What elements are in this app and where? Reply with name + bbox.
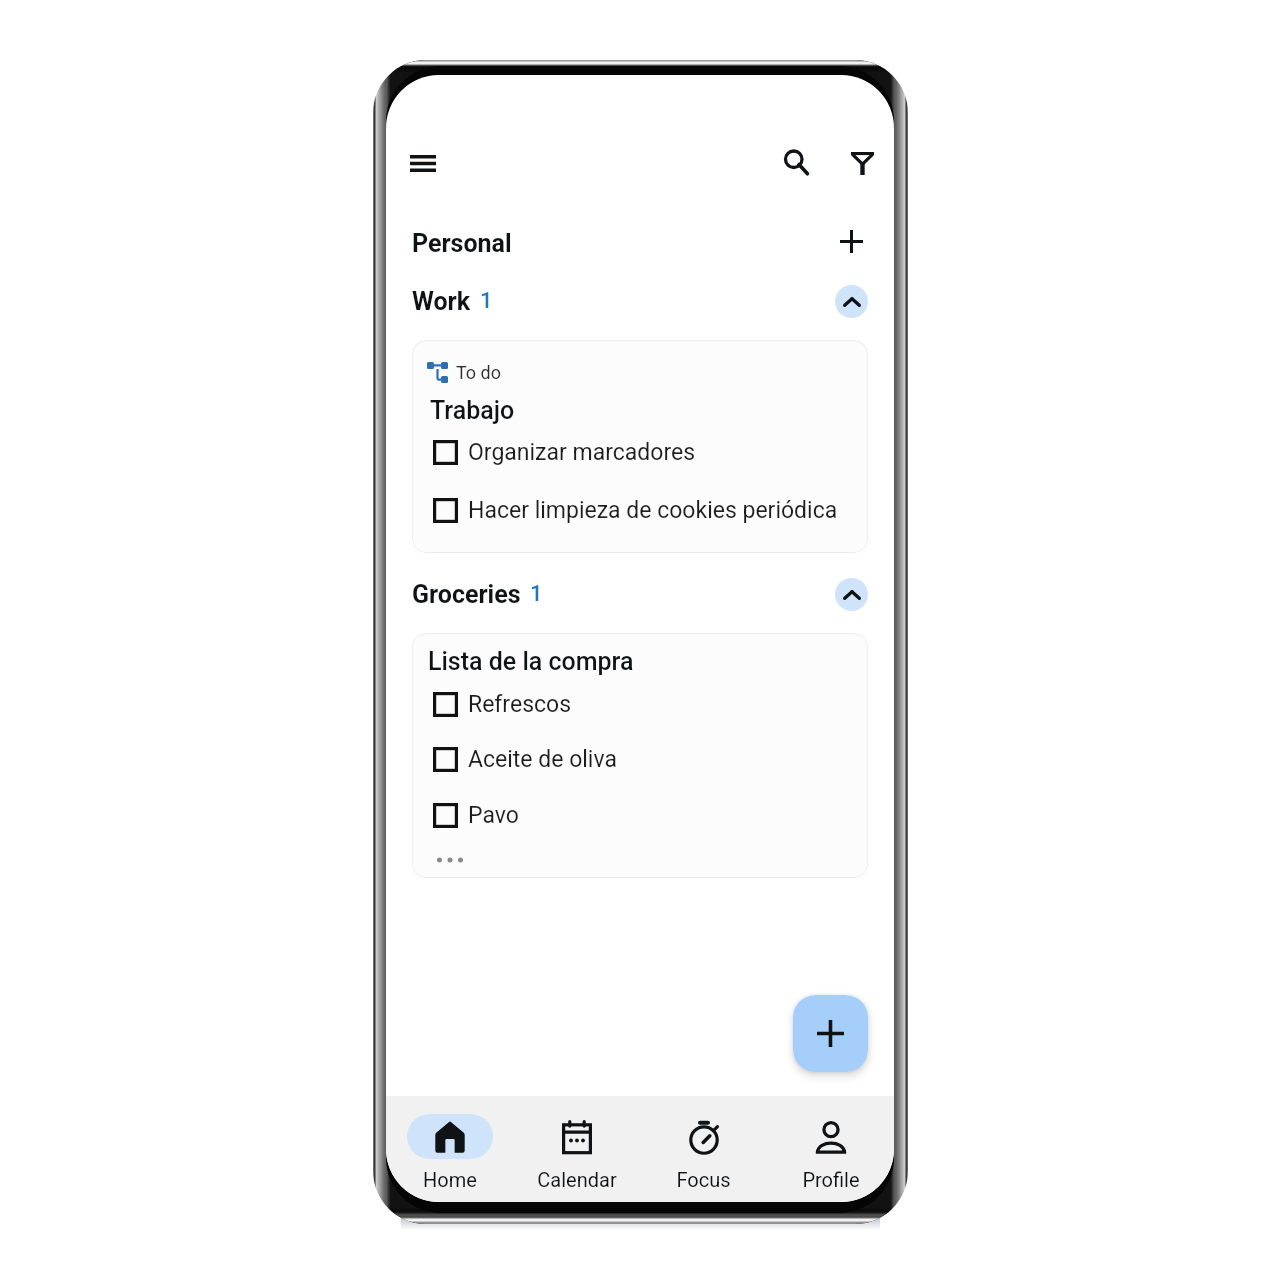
staticText: Aceite de oliva [468, 746, 617, 773]
staticText: Work [412, 287, 471, 316]
button[interactable]: Add task [793, 995, 868, 1072]
button[interactable]: Personal [386, 221, 894, 265]
button[interactable]: Focus [640, 1096, 767, 1202]
button[interactable]: Filter [839, 140, 885, 186]
button[interactable]: Groceries [386, 572, 894, 616]
button[interactable]: Collapse Groceries [835, 578, 868, 611]
button[interactable]: Search [773, 139, 819, 185]
staticText: Calendar [537, 1168, 617, 1191]
button[interactable]: Pavo [412, 792, 868, 838]
staticText: 1 [480, 288, 493, 314]
staticText: Personal [412, 229, 512, 258]
button[interactable]: Hacer limpieza de cookies periódica [412, 487, 868, 533]
button[interactable]: Menu [399, 144, 446, 182]
staticText: Hacer limpieza de cookies periódica [468, 497, 838, 524]
button[interactable]: Work [386, 279, 894, 323]
button[interactable]: Collapse Work [835, 285, 868, 318]
staticText: Focus [676, 1168, 731, 1191]
staticText: Home [423, 1168, 477, 1191]
button[interactable]: Refrescos [412, 681, 868, 727]
button[interactable]: Aceite de oliva [412, 736, 868, 782]
staticText: 1 [530, 581, 543, 607]
staticText: Trabajo [430, 396, 515, 425]
staticText: To do [456, 362, 502, 383]
button[interactable]: To do [412, 340, 868, 553]
staticText: Profile [802, 1168, 860, 1191]
staticText: Organizar marcadores [468, 439, 696, 466]
staticText: Groceries [412, 580, 521, 609]
staticText: Lista de la compra [428, 647, 634, 676]
button[interactable]: Organizar marcadores [412, 429, 868, 475]
button[interactable]: Home [386, 1096, 513, 1202]
button[interactable]: Lista de la compra [412, 633, 868, 878]
button[interactable]: Calendar [513, 1096, 640, 1202]
staticText: Refrescos [468, 691, 572, 718]
staticText: Pavo [468, 802, 519, 829]
button[interactable]: Profile [767, 1096, 894, 1202]
button[interactable]: Add list to Personal [830, 220, 872, 262]
